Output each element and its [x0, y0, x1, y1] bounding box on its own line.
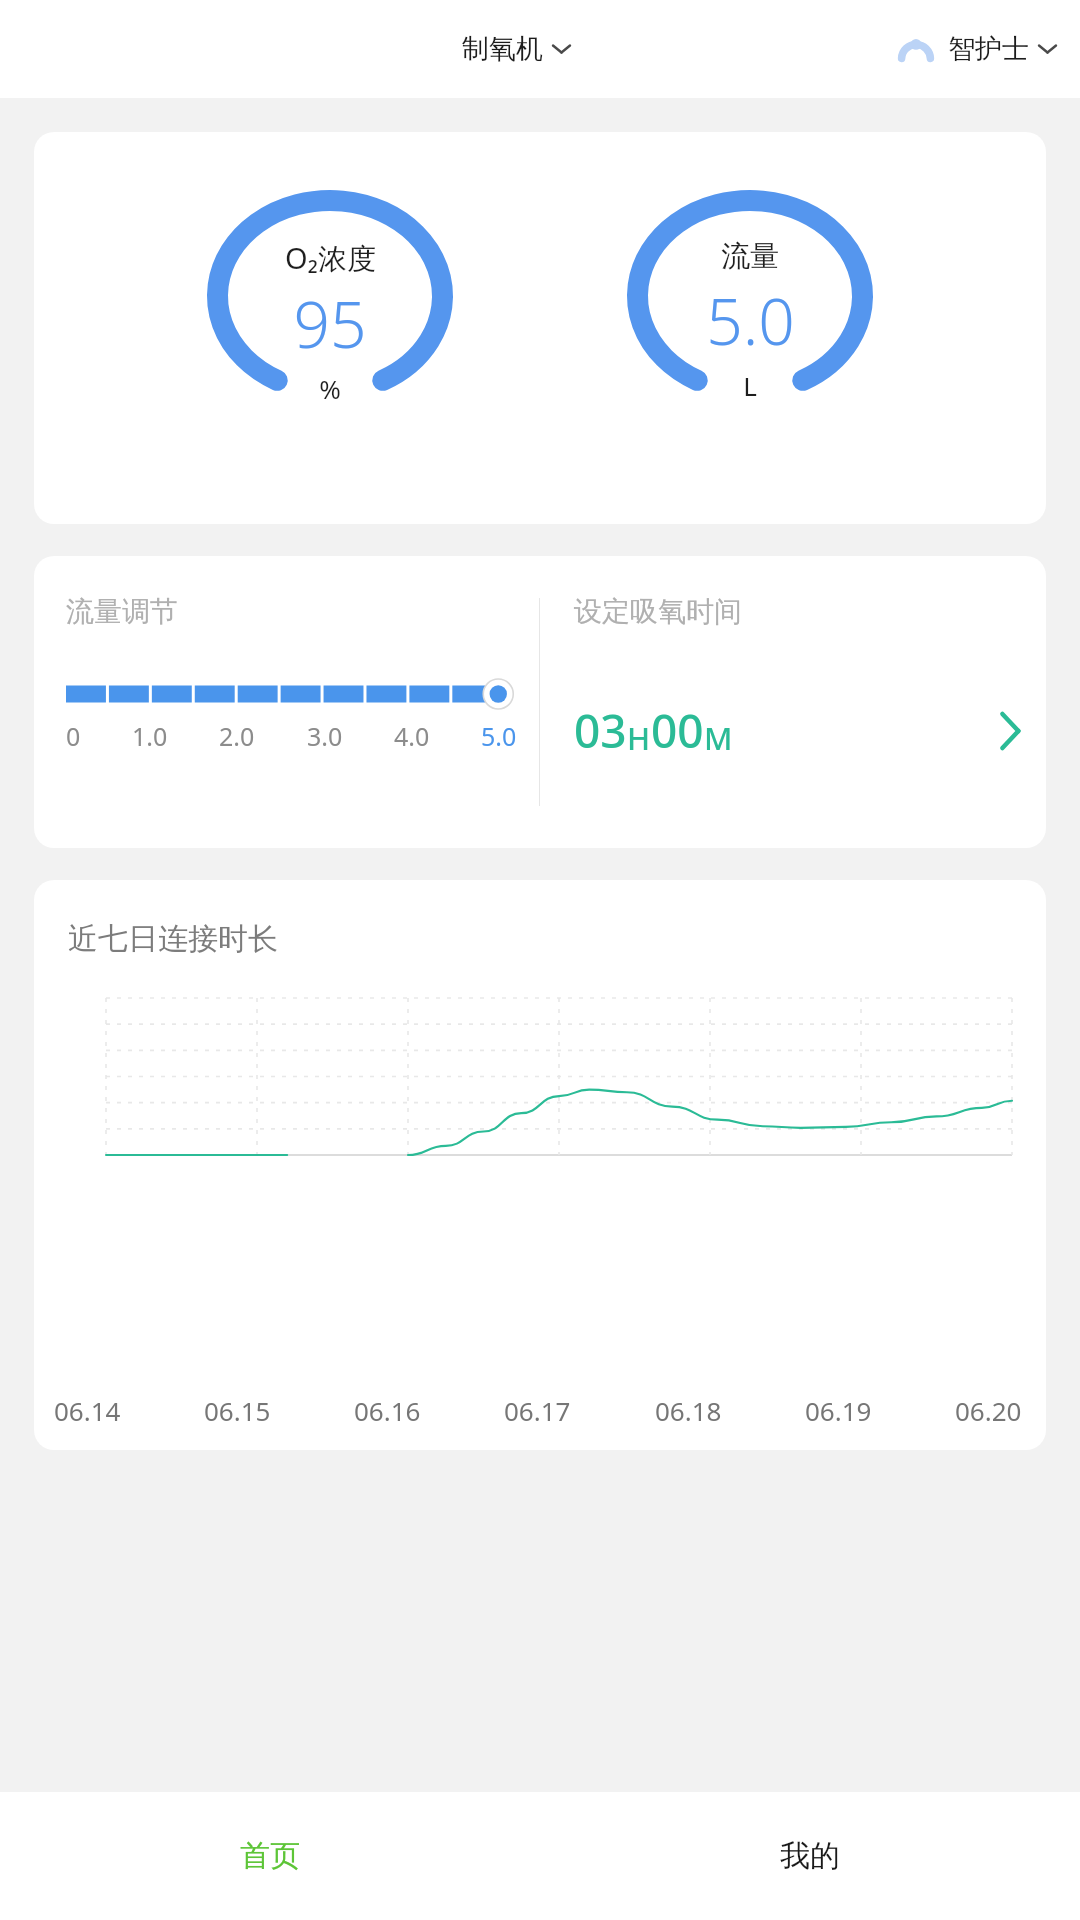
staticText: M	[704, 717, 733, 759]
staticText: 06.20	[955, 1393, 1022, 1428]
staticText: L	[743, 368, 757, 403]
staticText: 5.0	[706, 277, 795, 364]
staticText: 3.0	[307, 719, 343, 753]
staticText: 06.17	[504, 1393, 571, 1428]
staticText: 制氧机	[462, 32, 543, 66]
staticText: H	[627, 717, 651, 759]
button[interactable]: User avatar	[892, 27, 1062, 71]
staticText: 2.0	[219, 719, 255, 753]
staticText: 06.19	[805, 1393, 872, 1428]
staticText: O₂浓度	[285, 238, 376, 278]
staticText: 智护士	[948, 32, 1029, 66]
staticText: 06.14	[54, 1393, 121, 1428]
button[interactable]: 制氧机	[456, 28, 576, 70]
button[interactable]: 03	[540, 699, 1046, 762]
staticText: 06.18	[655, 1393, 722, 1428]
staticText: %	[319, 371, 341, 406]
staticText: 06.15	[204, 1393, 271, 1428]
staticText: 00	[651, 699, 704, 762]
button[interactable]: 我的	[540, 1792, 1080, 1920]
staticText: 近七日连接时长	[68, 920, 278, 958]
button[interactable]: 首页	[0, 1792, 540, 1920]
staticText: 1.0	[132, 719, 168, 753]
staticText: 95	[293, 280, 367, 367]
other: User avatar	[898, 31, 934, 67]
staticText: 5.0	[481, 719, 517, 753]
staticText: 首页	[240, 1837, 300, 1875]
staticText: 流量	[721, 238, 779, 275]
staticText: 4.0	[394, 719, 430, 753]
staticText: 03	[574, 699, 627, 762]
button[interactable]	[66, 679, 511, 709]
staticText: 我的	[780, 1837, 840, 1875]
staticText: 0	[66, 719, 81, 753]
staticText: 流量调节	[66, 594, 178, 629]
staticText: 06.16	[354, 1393, 421, 1428]
staticText: 设定吸氧时间	[574, 594, 742, 629]
